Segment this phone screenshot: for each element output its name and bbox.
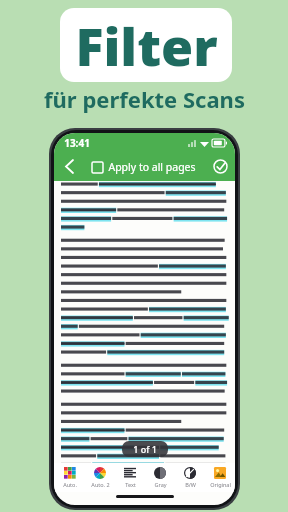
button[interactable]: B/W xyxy=(175,463,205,492)
staticText: Auto. 2 xyxy=(91,481,110,488)
button[interactable]: Original xyxy=(205,463,235,492)
staticText: für perfekte Scans xyxy=(44,84,245,114)
staticText: Auto. xyxy=(63,481,77,488)
staticText: Original xyxy=(210,481,231,488)
button[interactable]: Apply to all pages xyxy=(89,157,199,177)
staticText: 1 of 1 xyxy=(133,443,157,455)
staticText: 13:41 xyxy=(64,136,90,150)
button[interactable]: Done xyxy=(205,152,235,181)
staticText: Apply to all pages xyxy=(108,160,196,174)
button[interactable]: Gray xyxy=(145,463,175,492)
button[interactable]: Text xyxy=(115,463,145,492)
staticText: Filter xyxy=(75,10,218,81)
button[interactable] xyxy=(54,181,235,463)
staticText: B/W xyxy=(185,481,196,488)
button[interactable]: Auto. 2 xyxy=(85,463,115,492)
staticText: Text xyxy=(125,481,136,488)
staticText: Gray xyxy=(154,481,167,488)
button[interactable]: Auto. xyxy=(54,463,85,492)
button[interactable]: Back xyxy=(54,152,84,181)
